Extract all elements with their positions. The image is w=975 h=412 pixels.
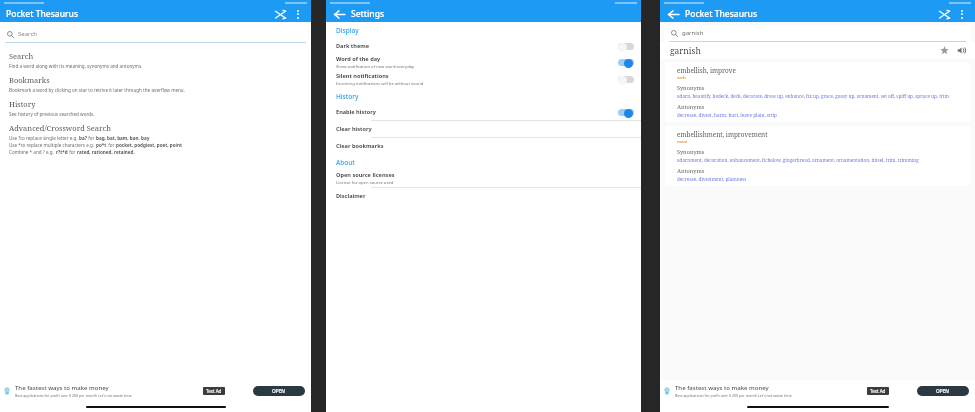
staticText: po*t xyxy=(96,142,107,148)
button[interactable]: Random word xyxy=(937,7,951,21)
button[interactable]: embellishment, improvement xyxy=(665,126,970,186)
staticText: verb xyxy=(677,75,686,81)
staticText: Pocket Thesaurus xyxy=(6,8,79,20)
staticText: Search xyxy=(18,30,37,38)
staticText: Show notification of new word everyday xyxy=(336,64,415,70)
staticText: decrease, divest, harm, hurt, leave plai… xyxy=(677,112,777,118)
staticText: Antonyms xyxy=(677,103,705,111)
staticText: garnish xyxy=(670,45,701,57)
staticText: See history of previous searched words. xyxy=(9,111,95,117)
button[interactable]: Bookmark xyxy=(938,44,951,57)
button[interactable]: OPEN xyxy=(253,386,305,396)
button[interactable]: Clear history xyxy=(326,121,641,137)
staticText: Use *to replace multiple characters e.g. xyxy=(9,142,96,148)
staticText: History xyxy=(336,92,359,101)
staticText: ba? xyxy=(79,135,87,141)
button[interactable]: Pronounce xyxy=(955,44,968,57)
staticText: The fastest ways to make money xyxy=(675,384,769,392)
staticText: Best applications for profit over $ 200 … xyxy=(675,393,792,398)
staticText: pocket, podgiest, poet, point xyxy=(116,142,182,148)
staticText: Incoming notifications will be without s… xyxy=(336,81,424,87)
button[interactable]: Search xyxy=(7,26,311,42)
button[interactable]: Bookmarks xyxy=(0,70,311,94)
staticText: Best applications for profit over $ 200 … xyxy=(15,393,132,398)
button[interactable]: embellish, improve xyxy=(665,62,970,122)
staticText: Antonyms xyxy=(677,167,705,175)
staticText: Synonyms xyxy=(677,148,705,156)
staticText: for xyxy=(68,149,77,155)
staticText: embellishment, improvement xyxy=(677,130,768,139)
staticText: Test Ad xyxy=(206,388,222,394)
button[interactable]: Enable history xyxy=(326,104,641,120)
staticText: rated, rationed, retained. xyxy=(77,149,135,155)
button[interactable]: Clear bookmarks xyxy=(326,138,641,154)
staticText: The fastest ways to make money xyxy=(15,384,109,392)
staticText: Open source licenses xyxy=(336,171,395,179)
button[interactable]: OPEN xyxy=(917,386,969,396)
staticText: Word of the day xyxy=(336,55,381,63)
button[interactable]: Word of the day xyxy=(326,54,641,71)
staticText: Silent notifications xyxy=(336,72,389,80)
staticText: embellish, improve xyxy=(677,66,736,75)
button[interactable]: More options xyxy=(291,7,305,21)
button[interactable]: Back xyxy=(332,7,346,21)
staticText: About xyxy=(336,158,355,167)
staticText: garnish xyxy=(682,29,704,37)
staticText: adornment, decoration, enhancement, fich… xyxy=(677,157,919,163)
button[interactable] xyxy=(616,107,635,118)
staticText: noun xyxy=(677,139,688,145)
staticText: for xyxy=(87,135,96,141)
staticText: Pocket Thesaurus xyxy=(685,8,758,20)
button[interactable]: Disclaimer xyxy=(326,188,641,204)
staticText: Test Ad xyxy=(870,388,886,394)
button[interactable] xyxy=(616,57,635,68)
staticText: Enable history xyxy=(336,108,376,116)
button[interactable] xyxy=(616,41,635,52)
staticText: History xyxy=(9,99,36,109)
staticText: Advanced/Crossword Search xyxy=(9,123,112,133)
button[interactable]: Silent notifications xyxy=(326,71,641,88)
staticText: adorn, beautify, bedeck, deck, decorate,… xyxy=(677,93,949,99)
staticText: Disclaimer xyxy=(336,192,366,200)
staticText: License for open source used xyxy=(336,180,394,186)
button[interactable]: The fastest ways to make money xyxy=(660,380,975,402)
staticText: Bookmarks xyxy=(9,75,50,85)
button[interactable]: Random word xyxy=(273,7,287,21)
staticText: Display xyxy=(336,26,359,35)
button[interactable]: Dark theme xyxy=(326,38,641,54)
staticText: Synonyms xyxy=(677,84,705,92)
button[interactable]: garnish xyxy=(671,25,971,41)
staticText: for xyxy=(107,142,116,148)
staticText: Settings xyxy=(351,8,385,20)
staticText: OPEN xyxy=(936,388,950,395)
button[interactable]: Back xyxy=(666,7,680,21)
button[interactable]: Advanced/Crossword Search xyxy=(0,118,311,156)
staticText: r?t*d xyxy=(56,149,68,155)
staticText: Use ?to replace single letter e.g. xyxy=(9,135,79,141)
staticText: Dark theme xyxy=(336,42,370,50)
button[interactable]: History xyxy=(0,94,311,118)
button[interactable]: Search xyxy=(0,46,311,70)
staticText: Combine * and ? e.g. xyxy=(9,149,56,155)
button[interactable]: The fastest ways to make money xyxy=(0,380,311,402)
button[interactable] xyxy=(616,74,635,85)
staticText: Bookmark a word by clicking on star to r… xyxy=(9,87,185,93)
staticText: bag, bat, bam, ban, bay xyxy=(96,135,150,141)
staticText: Clear history xyxy=(336,125,372,133)
staticText: OPEN xyxy=(272,388,286,395)
button[interactable]: More options xyxy=(955,7,969,21)
staticText: Search xyxy=(9,51,34,61)
button[interactable]: Open source licenses xyxy=(326,170,641,187)
staticText: Find a word along with its meaning, syno… xyxy=(9,63,143,69)
staticText: decrease, divestment, plainness xyxy=(677,176,747,182)
staticText: Clear bookmarks xyxy=(336,142,384,150)
